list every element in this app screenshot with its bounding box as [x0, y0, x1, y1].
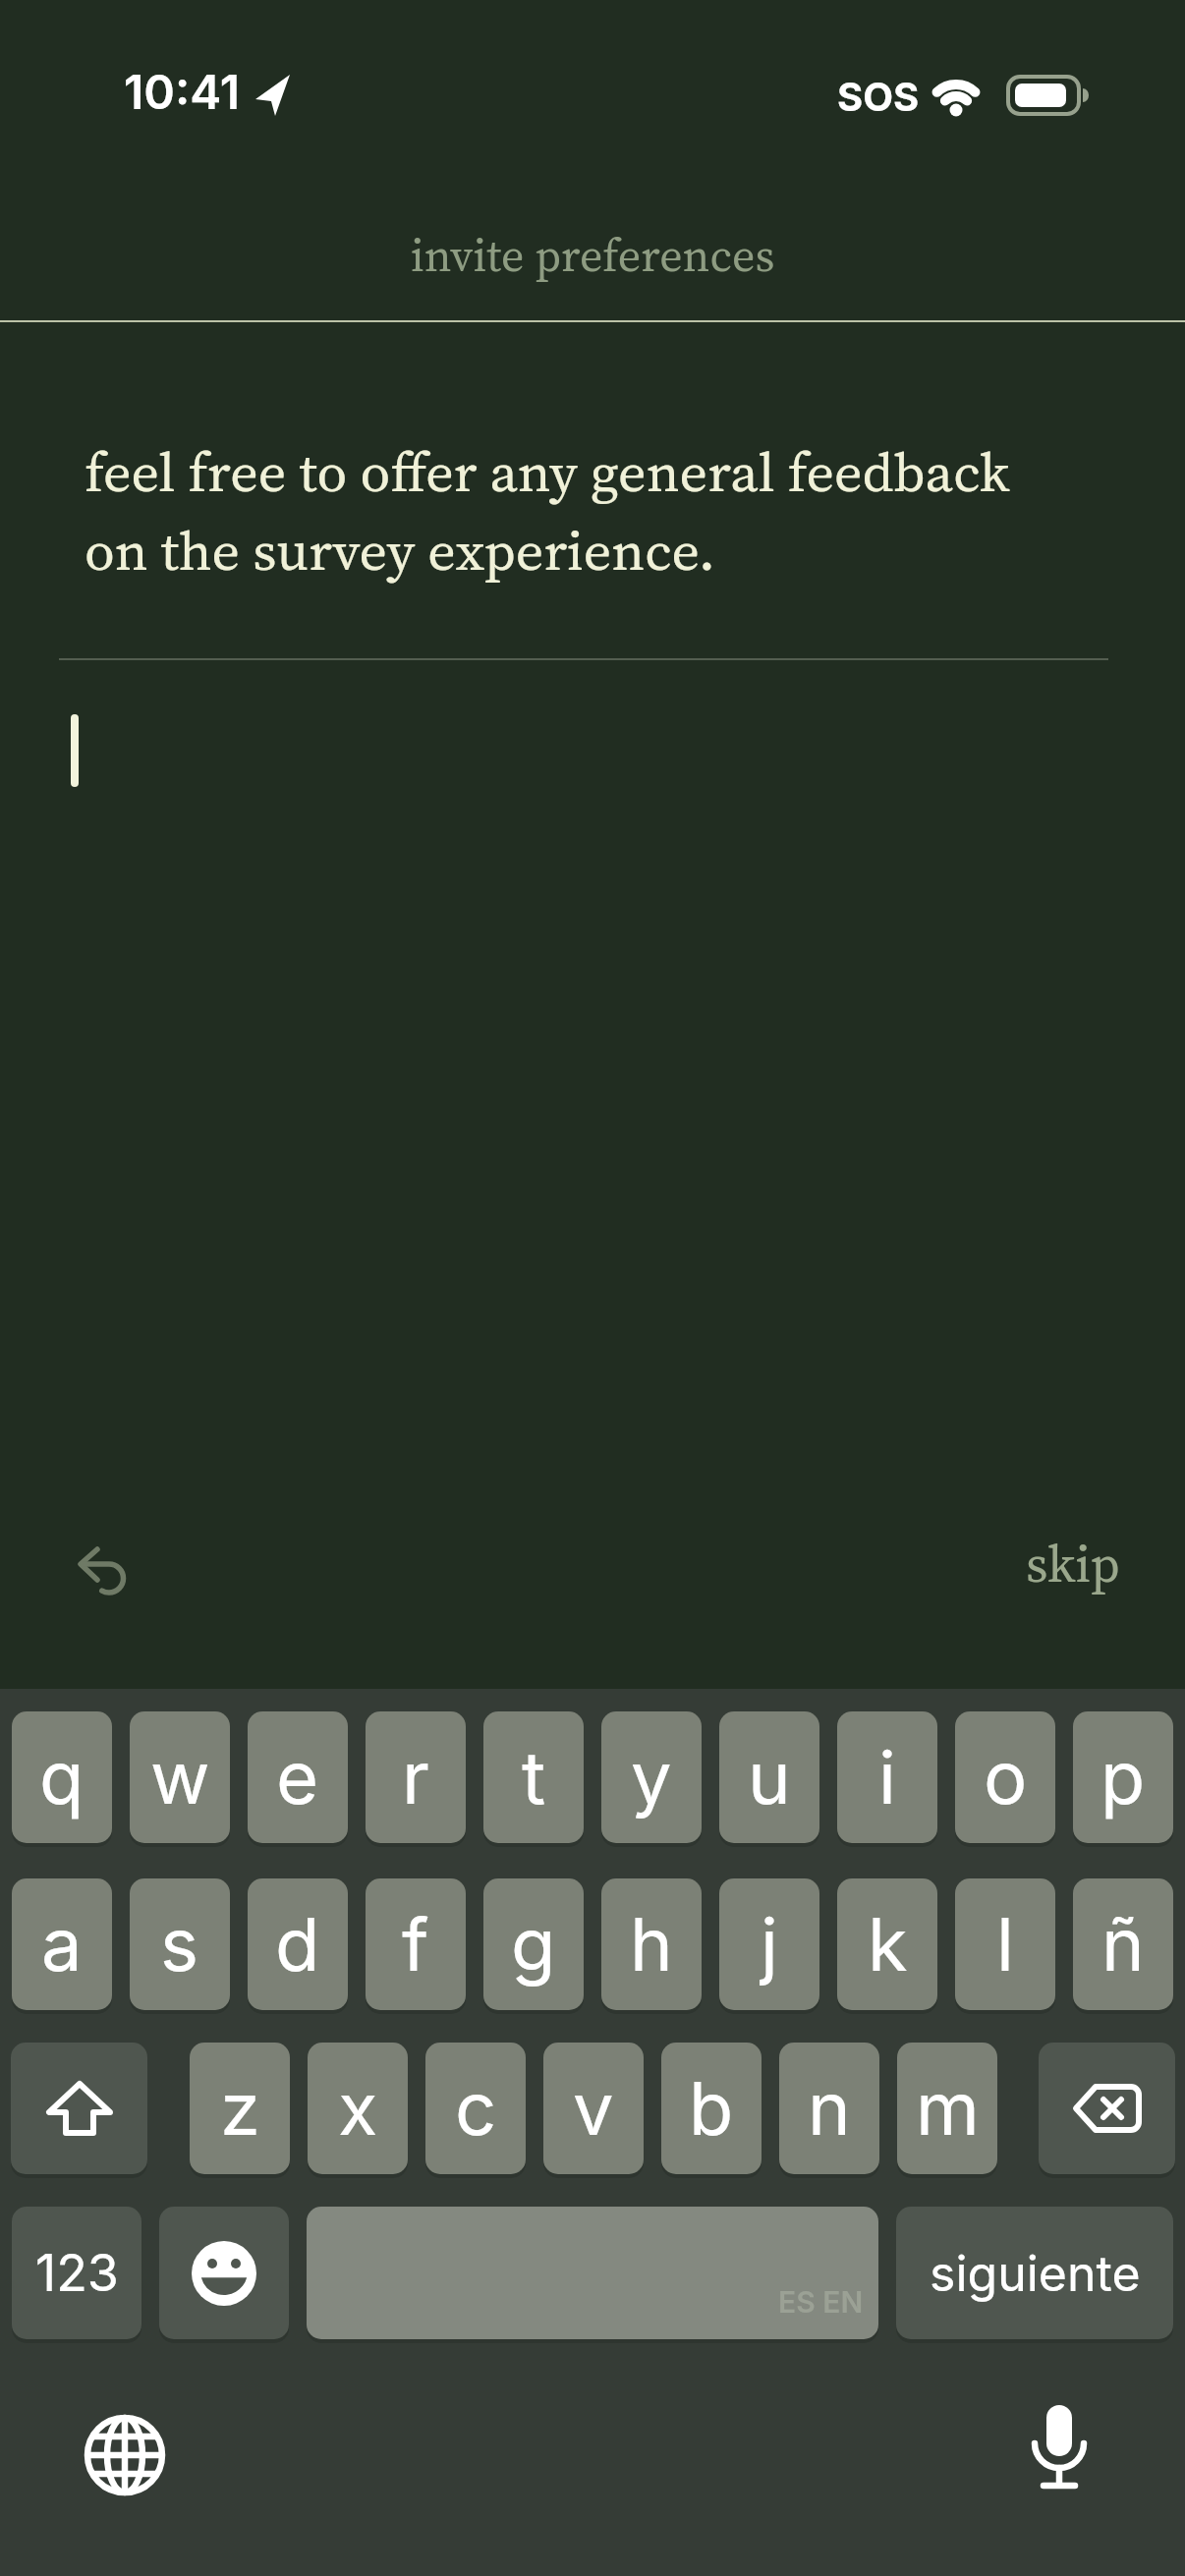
staticText: u — [748, 1733, 791, 1821]
button[interactable] — [1039, 2043, 1175, 2174]
button[interactable]: s — [130, 1878, 230, 2010]
button[interactable]: h — [601, 1878, 702, 2010]
button[interactable]: i — [837, 1711, 937, 1843]
staticText: ES EN — [778, 2284, 864, 2320]
staticText: z — [220, 2064, 260, 2153]
button[interactable]: d — [248, 1878, 348, 2010]
button[interactable]: o — [955, 1711, 1055, 1843]
button[interactable]: j — [719, 1878, 819, 2010]
staticText: n — [808, 2064, 851, 2153]
button[interactable] — [11, 2043, 147, 2174]
staticText: skip — [1026, 1529, 1120, 1598]
staticText: s — [160, 1900, 199, 1988]
button[interactable]: y — [601, 1711, 702, 1843]
staticText: c — [455, 2064, 497, 2153]
staticText: t — [522, 1733, 546, 1821]
staticText: x — [338, 2064, 378, 2153]
button[interactable]: n — [779, 2043, 879, 2174]
button[interactable]: k — [837, 1878, 937, 2010]
staticText: i — [878, 1733, 896, 1821]
button[interactable]: l — [955, 1878, 1055, 2010]
staticText: ñ — [1101, 1900, 1145, 1988]
button[interactable]: m — [897, 2043, 997, 2174]
button[interactable]: g — [483, 1878, 584, 2010]
button[interactable]: ES EN — [307, 2207, 878, 2339]
staticText: y — [631, 1733, 672, 1821]
button[interactable]: e — [248, 1711, 348, 1843]
staticText: w — [150, 1733, 210, 1821]
button[interactable]: c — [425, 2043, 526, 2174]
staticText: v — [573, 2064, 614, 2153]
button[interactable]: ñ — [1073, 1878, 1173, 2010]
staticText: j — [761, 1900, 778, 1988]
button[interactable]: w — [130, 1711, 230, 1843]
staticText: g — [511, 1900, 556, 1988]
button[interactable]: q — [12, 1711, 112, 1843]
staticText: d — [275, 1900, 320, 1988]
button[interactable]: a — [12, 1878, 112, 2010]
button[interactable]: u — [719, 1711, 819, 1843]
staticText: b — [689, 2064, 734, 2153]
staticText: a — [41, 1900, 83, 1988]
staticText: k — [868, 1900, 908, 1988]
staticText: 123 — [35, 2242, 119, 2304]
button[interactable]: x — [308, 2043, 408, 2174]
button[interactable]: z — [190, 2043, 290, 2174]
staticText: e — [276, 1733, 319, 1821]
staticText: f — [402, 1900, 429, 1988]
button[interactable] — [85, 2416, 164, 2494]
button[interactable]: f — [366, 1878, 466, 2010]
staticText: feel free to offer any general feedback … — [85, 434, 1010, 588]
button[interactable] — [159, 2207, 289, 2339]
staticText: r — [402, 1733, 429, 1821]
staticText: 10:41 — [124, 63, 241, 120]
button[interactable]: p — [1073, 1711, 1173, 1843]
button[interactable]: siguiente — [896, 2207, 1173, 2339]
staticText: m — [916, 2064, 980, 2153]
button[interactable]: 123 — [12, 2207, 141, 2339]
button[interactable]: v — [543, 2043, 644, 2174]
button[interactable]: b — [661, 2043, 762, 2174]
staticText: l — [996, 1900, 1014, 1988]
staticText: invite preferences — [411, 224, 775, 285]
button[interactable]: r — [366, 1711, 466, 1843]
button[interactable] — [1030, 2403, 1089, 2501]
button[interactable]: skip — [1026, 1529, 1120, 1598]
button[interactable] — [77, 1544, 128, 1596]
staticText: q — [39, 1733, 85, 1821]
staticText: o — [984, 1733, 1028, 1821]
staticText: SOS — [837, 73, 920, 120]
staticText: p — [1100, 1733, 1146, 1821]
button[interactable]: t — [483, 1711, 584, 1843]
staticText: h — [630, 1900, 673, 1988]
staticText: siguiente — [930, 2244, 1141, 2303]
